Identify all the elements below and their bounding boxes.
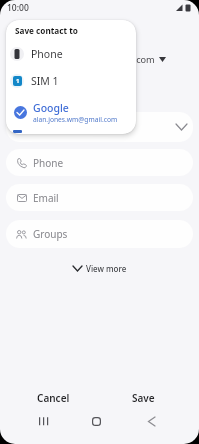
staticText: Groups <box>33 227 68 241</box>
staticText: 10:00 <box>7 2 29 14</box>
staticText: Google <box>33 101 69 115</box>
button[interactable]: Phone <box>6 149 193 176</box>
staticText: Save <box>132 391 155 405</box>
staticText: 1 <box>16 77 20 85</box>
button[interactable]: Email <box>6 184 193 211</box>
button[interactable] <box>6 112 193 142</box>
staticText: Phone <box>31 47 63 61</box>
button[interactable]: Phone <box>6 43 136 65</box>
button[interactable]: 1 <box>6 70 136 92</box>
button[interactable]: Cancel <box>33 389 73 407</box>
button[interactable] <box>92 417 101 426</box>
button[interactable]: Save <box>123 389 163 407</box>
staticText: alan.jones.wm@gmail.com <box>39 53 155 66</box>
button[interactable] <box>148 417 155 426</box>
staticText: View more <box>86 263 127 274</box>
staticText: SIM 1 <box>31 74 59 88</box>
staticText: alan.jones.wm@gmail.com <box>33 115 118 124</box>
button[interactable]: Groups <box>6 220 193 248</box>
staticText: Save contact to <box>15 25 78 36</box>
button[interactable]: Google <box>6 97 136 127</box>
button[interactable] <box>39 417 48 426</box>
staticText: Email <box>33 191 59 205</box>
button[interactable]: View more <box>0 261 199 276</box>
staticText: Phone <box>33 156 64 170</box>
staticText: Cancel <box>37 391 70 405</box>
